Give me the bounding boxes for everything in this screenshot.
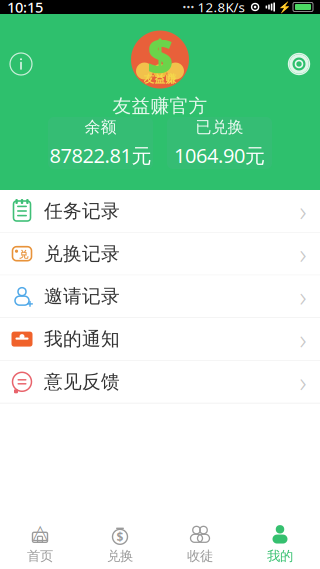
button[interactable]: 任务记录 <box>0 190 320 233</box>
staticText: 87822.81元 <box>49 142 151 169</box>
staticText: 兑 <box>19 249 28 260</box>
button[interactable]: 邀请记录 <box>0 275 320 318</box>
staticText: 兑换 <box>107 548 133 564</box>
staticText: 友益赚官方 <box>112 94 207 117</box>
staticText: 友益赚 <box>143 72 176 85</box>
staticText: 12.8K/s <box>195 0 245 16</box>
staticText: 任务记录 <box>44 199 120 222</box>
staticText: › <box>299 236 306 271</box>
staticText: › <box>299 279 306 314</box>
staticText: S <box>147 25 173 86</box>
button[interactable]: 意见反馈 <box>0 361 320 403</box>
staticText: 兑换记录 <box>44 242 120 265</box>
button[interactable]: Settings <box>284 49 320 79</box>
staticText: 意见反馈 <box>44 370 120 393</box>
button[interactable]: 兑 <box>0 233 320 275</box>
button[interactable]: 我的 <box>240 520 320 568</box>
staticText: △ <box>32 520 47 543</box>
staticText: $ <box>116 529 123 545</box>
button[interactable]: 余额 <box>48 117 153 169</box>
staticText: ⚡ <box>278 1 291 13</box>
button[interactable]: 我的通知 <box>0 318 320 361</box>
staticText: › <box>299 321 306 357</box>
staticText: › <box>299 193 306 229</box>
button[interactable]: 收徒 <box>160 520 240 568</box>
staticText: 收徒 <box>187 548 213 564</box>
button[interactable]: Info <box>0 49 36 79</box>
staticText: 我的 <box>267 548 293 564</box>
staticText: › <box>299 364 306 399</box>
button[interactable]: △ <box>0 520 80 568</box>
staticText: 已兑换 <box>195 117 243 137</box>
button[interactable]: $ <box>80 520 160 568</box>
staticText: 1064.90元 <box>174 142 265 169</box>
staticText: 邀请记录 <box>44 285 120 308</box>
staticText: ··· <box>183 0 195 16</box>
staticText: 余额 <box>84 117 116 137</box>
button[interactable]: 已兑换 <box>167 117 272 169</box>
staticText: 我的通知 <box>44 328 120 350</box>
staticText: 首页 <box>27 548 53 564</box>
staticText: 10:15 <box>7 0 43 17</box>
